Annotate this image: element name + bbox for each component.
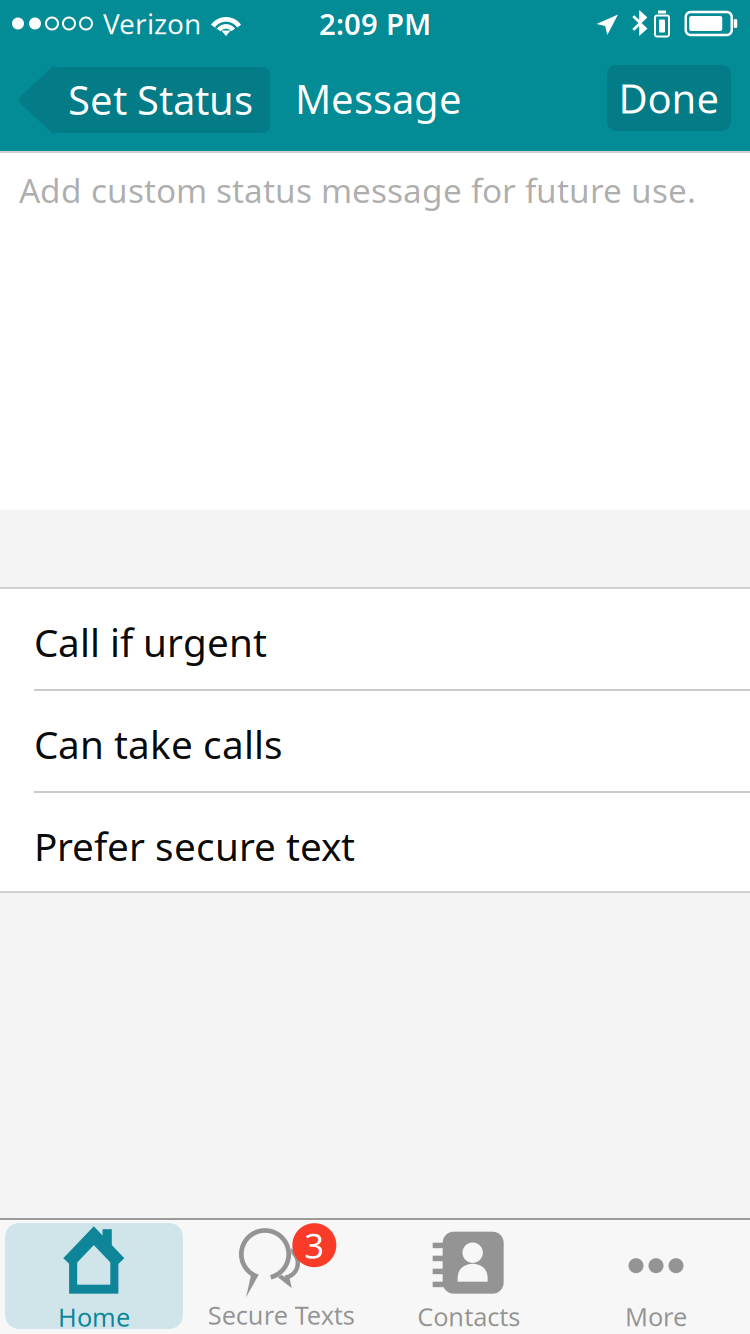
staticText: Prefer secure text (34, 820, 355, 872)
button[interactable]: Call if urgent (0, 589, 750, 689)
staticText: Contacts (417, 1300, 520, 1333)
staticText: 3 (304, 1222, 324, 1268)
staticText: More (625, 1300, 687, 1333)
button[interactable]: Done (607, 65, 731, 131)
staticText: Home (58, 1300, 130, 1334)
staticText: Can take calls (34, 718, 283, 770)
button[interactable]: Home (5, 1223, 183, 1329)
button[interactable]: More (567, 1223, 745, 1329)
staticText: Add custom status message for future use… (19, 168, 696, 212)
button[interactable]: Prefer secure text (0, 793, 750, 893)
button[interactable]: Set Status (18, 67, 270, 133)
staticText: Verizon (103, 5, 201, 42)
staticText: Secure Texts (208, 1298, 355, 1332)
staticText: 2:09 PM (319, 4, 431, 43)
staticText: Call if urgent (34, 616, 267, 668)
button[interactable]: 3 (192, 1223, 370, 1329)
staticText: Set Status (68, 73, 253, 126)
button[interactable]: Can take calls (0, 691, 750, 791)
button[interactable]: Contacts (380, 1223, 558, 1329)
staticText: Done (618, 71, 719, 124)
staticText: Message (295, 72, 462, 125)
